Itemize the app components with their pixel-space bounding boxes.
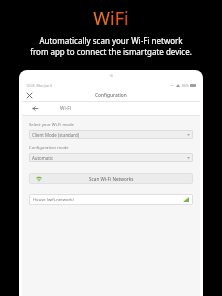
staticText: Configuration mode bbox=[29, 145, 69, 151]
staticText: Automatic bbox=[32, 155, 54, 161]
staticText: 86% bbox=[182, 83, 189, 88]
staticText: •• bbox=[171, 83, 174, 88]
staticText: Scan Wi-Fi Networks bbox=[89, 176, 134, 182]
staticText: Wi-Fi bbox=[60, 105, 71, 112]
button[interactable]: Client Mode (standard) bbox=[29, 130, 193, 139]
button[interactable]: Scan Wi-Fi Networks bbox=[29, 173, 193, 184]
staticText: Automatically scan your Wi-Fi network bbox=[39, 35, 183, 46]
button[interactable]: Close bbox=[25, 91, 34, 100]
staticText: WiFi bbox=[93, 6, 129, 31]
staticText: House (wifi-network) bbox=[33, 197, 74, 203]
button[interactable]: Back bbox=[31, 104, 40, 113]
staticText: 10:35 Mon Jan 6 bbox=[26, 83, 53, 88]
staticText: Configuration bbox=[95, 92, 127, 99]
staticText: from app to connect the ismartgate devic… bbox=[30, 46, 192, 57]
button[interactable]: House (wifi-network) bbox=[29, 194, 193, 205]
staticText: Select your Wi-Fi mode bbox=[29, 122, 74, 128]
button[interactable]: Automatic bbox=[29, 153, 193, 162]
staticText: Client Mode (standard) bbox=[32, 132, 80, 138]
